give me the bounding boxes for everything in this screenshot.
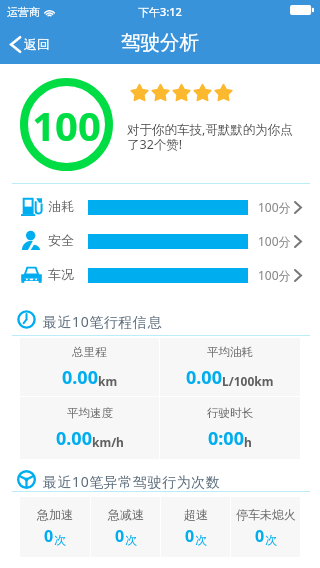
staticText: 0 bbox=[44, 525, 54, 547]
staticText: 油耗 bbox=[48, 198, 74, 214]
staticText: 急加速 bbox=[37, 507, 73, 522]
staticText: 次 bbox=[125, 532, 137, 547]
staticText: 0.00 bbox=[62, 365, 98, 390]
staticText: 100分 bbox=[258, 233, 291, 249]
staticText: 对于你的车技,哥默默的为你点了32个赞! bbox=[127, 121, 303, 153]
staticText: 最近10笔异常驾驶行为次数 bbox=[43, 472, 221, 491]
staticText: 次 bbox=[265, 532, 277, 547]
staticText: 平均油耗 bbox=[207, 345, 253, 359]
button[interactable]: 急加速 bbox=[20, 497, 90, 557]
staticText: 0 bbox=[185, 525, 195, 547]
staticText: 0:00 bbox=[208, 426, 244, 451]
button[interactable]: 行驶时长 bbox=[160, 397, 300, 459]
staticText: 0 bbox=[255, 525, 265, 547]
button[interactable]: 平均油耗 bbox=[160, 338, 300, 396]
staticText: 车况 bbox=[48, 266, 74, 282]
staticText: 返回 bbox=[24, 36, 50, 52]
staticText: 急减速 bbox=[108, 507, 144, 522]
staticText: 总里程 bbox=[72, 345, 107, 359]
staticText: 平均速度 bbox=[67, 406, 113, 420]
staticText: 0.00 bbox=[186, 365, 222, 390]
button[interactable]: 安全 bbox=[0, 225, 320, 259]
button[interactable]: 总里程 bbox=[20, 338, 159, 396]
staticText: 超速 bbox=[184, 507, 208, 522]
staticText: 安全 bbox=[48, 232, 74, 248]
button[interactable]: 超速 bbox=[161, 497, 230, 557]
staticText: 100 bbox=[32, 98, 101, 152]
staticText: 下午3:12 bbox=[138, 4, 182, 19]
staticText: 行驶时长 bbox=[207, 406, 253, 420]
staticText: 停车未熄火 bbox=[236, 507, 296, 522]
button[interactable]: 返回 bbox=[0, 24, 60, 64]
staticText: km bbox=[98, 373, 118, 389]
button[interactable]: 平均速度 bbox=[20, 397, 159, 459]
staticText: 100分 bbox=[258, 199, 291, 215]
staticText: 运营商 bbox=[7, 5, 40, 19]
button[interactable]: 急减速 bbox=[91, 497, 160, 557]
staticText: 次 bbox=[54, 532, 66, 547]
staticText: h bbox=[244, 434, 252, 450]
button[interactable]: 车况 bbox=[0, 259, 320, 293]
button[interactable]: 停车未熄火 bbox=[231, 497, 300, 557]
staticText: 驾驶分析 bbox=[121, 30, 199, 55]
staticText: 100分 bbox=[258, 267, 291, 283]
staticText: 次 bbox=[195, 532, 207, 547]
staticText: 最近10笔行程信息 bbox=[43, 312, 162, 331]
staticText: 0 bbox=[115, 525, 125, 547]
staticText: km/h bbox=[92, 434, 124, 450]
staticText: L/100km bbox=[222, 373, 274, 389]
button[interactable]: 油耗 bbox=[0, 191, 320, 225]
staticText: 0.00 bbox=[56, 426, 92, 451]
